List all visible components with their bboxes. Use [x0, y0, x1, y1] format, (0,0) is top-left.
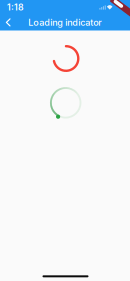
staticText: 1:18: [7, 2, 24, 13]
button[interactable]: Back: [1, 14, 15, 31]
staticText: Loading indicator: [28, 17, 102, 28]
